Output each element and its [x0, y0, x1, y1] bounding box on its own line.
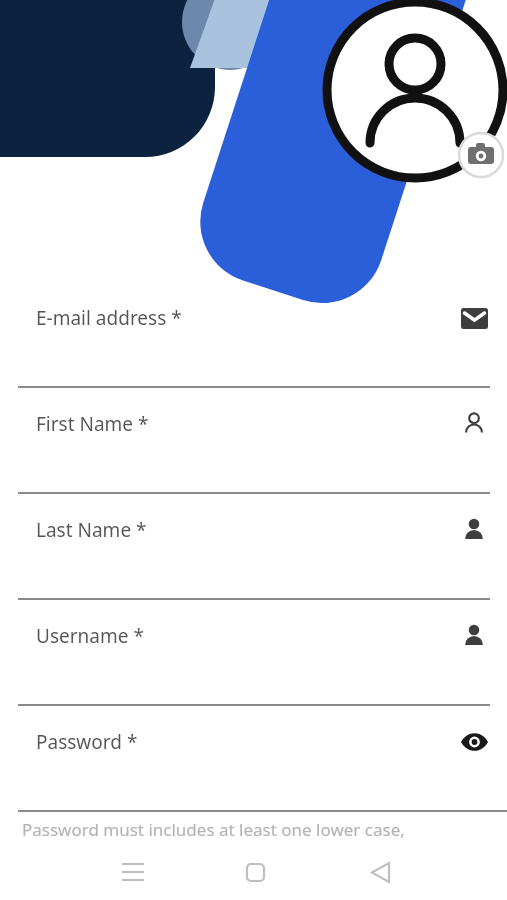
button[interactable]: Menu: [111, 844, 155, 900]
staticText: one upper case, special character and le…: [22, 841, 379, 864]
button[interactable]: Last Name *: [0, 494, 507, 600]
button[interactable]: Home: [233, 844, 277, 900]
button[interactable]: Username *: [0, 600, 507, 706]
button[interactable]: Show password: [459, 727, 489, 757]
button[interactable]: Password *: [36, 706, 489, 778]
staticText: Password *: [36, 729, 138, 755]
staticText: First Name *: [36, 411, 149, 437]
staticText: Password must includes at least one lowe…: [22, 818, 405, 841]
staticText: E-mail address *: [36, 305, 182, 331]
button[interactable]: E-mail address *: [0, 282, 507, 388]
button[interactable]: First Name *: [0, 388, 507, 494]
staticText: Username *: [36, 623, 144, 649]
button[interactable]: Change profile photo: [459, 133, 503, 177]
staticText: Last Name *: [36, 517, 147, 543]
button[interactable]: Back: [358, 844, 402, 900]
